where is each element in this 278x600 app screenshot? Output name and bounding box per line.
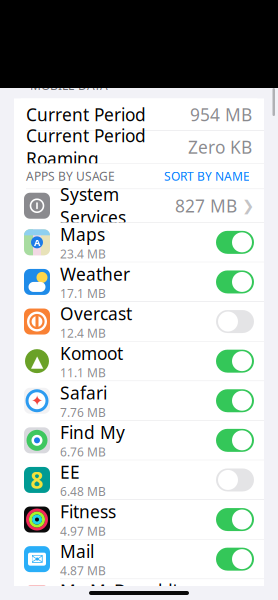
staticText: 12.4 MB bbox=[60, 325, 106, 341]
button[interactable]: SORT BY NAME bbox=[156, 164, 252, 188]
staticText: System Services bbox=[60, 183, 126, 229]
staticText: Overcast bbox=[60, 302, 132, 325]
staticText: 8 bbox=[30, 465, 43, 495]
staticText: 7.76 MB bbox=[60, 404, 106, 420]
staticText: 4.97 MB bbox=[60, 523, 106, 539]
staticText: 11.1 MB bbox=[60, 365, 106, 381]
staticText: 17.1 MB bbox=[60, 285, 106, 301]
staticText: Safari bbox=[60, 381, 107, 404]
staticText: M bbox=[27, 585, 47, 600]
staticText: Zero KB bbox=[188, 135, 252, 158]
staticText: ✦ bbox=[31, 392, 43, 409]
button[interactable]: Find My bbox=[14, 421, 264, 460]
button[interactable]: Current Period bbox=[14, 98, 264, 130]
staticText: ✉ bbox=[30, 550, 43, 568]
button[interactable]: ✉ bbox=[14, 540, 264, 579]
staticText: Find My bbox=[60, 421, 125, 444]
staticText: 6.48 MB bbox=[60, 483, 106, 499]
staticText: Current Period Roaming bbox=[26, 124, 146, 170]
button[interactable]: Fitness bbox=[14, 500, 264, 539]
staticText: Mail bbox=[60, 540, 94, 563]
staticText: 4.87 MB bbox=[60, 563, 106, 579]
button[interactable]: Overcast bbox=[14, 302, 264, 341]
staticText: EE bbox=[60, 460, 80, 483]
staticText: MOBILE DATA bbox=[30, 77, 108, 93]
staticText: My McDonald's bbox=[60, 579, 184, 600]
button[interactable]: M bbox=[14, 579, 264, 600]
staticText: 954 MB bbox=[190, 103, 252, 126]
button[interactable]: ▲ bbox=[14, 342, 264, 381]
staticText: 6.76 MB bbox=[60, 444, 106, 460]
staticText: Komoot bbox=[60, 342, 123, 365]
staticText: 827 MB bbox=[175, 194, 237, 217]
button[interactable]: System Services bbox=[14, 189, 264, 222]
staticText: APPS BY USAGE bbox=[26, 168, 115, 184]
staticText: ❯ bbox=[237, 197, 254, 214]
staticText: SORT BY NAME bbox=[164, 168, 250, 184]
button[interactable]: A bbox=[14, 223, 264, 262]
button[interactable]: Current Period Roaming bbox=[14, 131, 264, 163]
staticText: ▲ bbox=[31, 352, 43, 370]
button[interactable]: ✦ bbox=[14, 381, 264, 420]
staticText: 23.4 MB bbox=[60, 246, 106, 262]
staticText: Fitness bbox=[60, 500, 116, 523]
button[interactable]: Weather bbox=[14, 262, 264, 301]
staticText: Current Period bbox=[26, 103, 146, 126]
staticText: A bbox=[34, 236, 40, 248]
button[interactable]: 8 bbox=[14, 460, 264, 499]
staticText: Weather bbox=[60, 262, 130, 285]
staticText: Maps bbox=[60, 223, 105, 246]
